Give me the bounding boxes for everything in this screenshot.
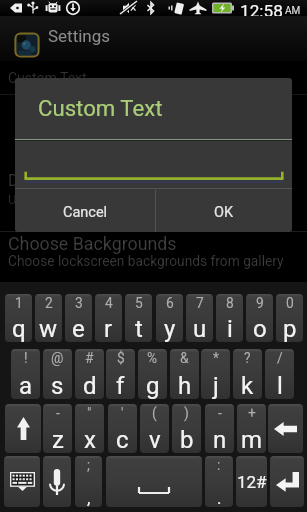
button[interactable]: 3: [65, 294, 92, 342]
staticText: -: [56, 405, 60, 421]
staticText: 6: [166, 295, 174, 311]
staticText: %: [147, 350, 158, 366]
staticText: 12:58: [240, 1, 283, 17]
button[interactable]: 2: [35, 294, 62, 342]
button[interactable]: 9: [246, 294, 273, 342]
staticText: Choose lockscreen backgrounds from galle…: [8, 253, 284, 269]
staticText: h: [178, 372, 192, 399]
staticText: 2: [45, 295, 53, 311]
button[interactable]: ;: [75, 456, 102, 507]
button[interactable]: 12#: [236, 456, 267, 507]
staticText: v: [149, 426, 161, 453]
staticText: p: [283, 315, 297, 342]
staticText: u: [193, 315, 207, 342]
staticText: ): [184, 405, 189, 421]
staticText: q: [12, 315, 26, 342]
staticText: j: [213, 372, 219, 399]
staticText: $: [117, 350, 125, 366]
button[interactable]: Enter: [270, 456, 304, 507]
button[interactable]: $: [106, 349, 135, 399]
button[interactable]: Backspace: [268, 404, 303, 453]
button[interactable]: 7: [186, 294, 213, 342]
button[interactable]: /: [265, 349, 294, 399]
button[interactable]: Voice input: [43, 456, 71, 507]
staticText: y: [164, 315, 176, 342]
button[interactable]: !: [11, 349, 40, 399]
button[interactable]: 1: [5, 294, 32, 342]
button[interactable]: 4: [95, 294, 122, 342]
staticText: s: [51, 372, 64, 399]
button[interactable]: #: [75, 349, 104, 399]
staticText: i: [227, 315, 233, 342]
staticText: r: [104, 315, 113, 342]
button[interactable]: Shift: [5, 404, 41, 453]
staticText: 12#: [237, 472, 267, 492]
staticText: ": [87, 405, 92, 421]
button[interactable]: &: [170, 349, 199, 399]
staticText: f: [116, 372, 125, 399]
staticText: Cancel: [63, 204, 108, 221]
staticText: OK: [214, 204, 234, 221]
button[interactable]: OK: [156, 190, 292, 232]
button[interactable]: :: [205, 456, 233, 507]
staticText: 3: [75, 295, 83, 311]
staticText: #: [85, 350, 94, 366]
button[interactable]: 6: [156, 294, 183, 342]
staticText: .: [217, 488, 222, 507]
staticText: e: [72, 315, 85, 342]
staticText: (: [152, 405, 157, 421]
button[interactable]: 8: [216, 294, 243, 342]
button[interactable]: %: [138, 349, 167, 399]
staticText: o: [253, 315, 267, 342]
staticText: /: [277, 350, 283, 366]
staticText: 7: [196, 295, 204, 311]
button[interactable]: ": [75, 404, 104, 453]
staticText: ;: [87, 457, 90, 473]
staticText: 5: [135, 295, 143, 311]
button[interactable]: *: [201, 349, 230, 399]
staticText: z: [52, 426, 64, 453]
button[interactable]: (: [140, 404, 169, 453]
staticText: Choose Backgrounds: [8, 233, 177, 254]
staticText: x: [84, 426, 96, 453]
staticText: ?: [244, 350, 251, 366]
button[interactable]: +: [237, 404, 266, 453]
staticText: t: [135, 315, 143, 342]
button[interactable]: ): [172, 404, 201, 453]
button[interactable]: Cancel: [15, 190, 155, 232]
staticText: w: [39, 315, 58, 342]
staticText: 1: [15, 295, 23, 311]
staticText: ': [121, 405, 124, 421]
staticText: c: [116, 426, 129, 453]
staticText: n: [213, 426, 227, 453]
staticText: a: [19, 372, 33, 399]
staticText: 0: [286, 295, 294, 311]
button[interactable]: Switch keyboard: [4, 456, 40, 507]
staticText: *: [213, 350, 219, 366]
staticText: ,: [87, 488, 91, 507]
button[interactable]: 0: [276, 294, 303, 342]
staticText: &: [180, 350, 189, 366]
button[interactable]: Space: [106, 456, 202, 507]
staticText: b: [180, 426, 194, 453]
button[interactable]: 5: [125, 294, 152, 342]
staticText: 4: [105, 295, 113, 311]
staticText: Default Text: [8, 171, 94, 190]
staticText: +: [248, 405, 256, 421]
staticText: !: [24, 350, 28, 366]
staticText: 9: [256, 295, 264, 311]
staticText: @: [51, 350, 64, 366]
button[interactable]: -: [43, 404, 72, 453]
staticText: -: [218, 405, 222, 421]
staticText: 8: [226, 295, 234, 311]
button[interactable]: ': [108, 404, 137, 453]
button[interactable]: ?: [233, 349, 262, 399]
staticText: m: [241, 426, 263, 453]
staticText: l: [277, 372, 283, 399]
button[interactable]: -: [205, 404, 234, 453]
staticText: AM: [285, 5, 301, 17]
staticText: k: [241, 372, 254, 399]
button[interactable]: @: [43, 349, 72, 399]
staticText: Settings: [48, 26, 111, 46]
staticText: Custom Text: [8, 70, 87, 86]
